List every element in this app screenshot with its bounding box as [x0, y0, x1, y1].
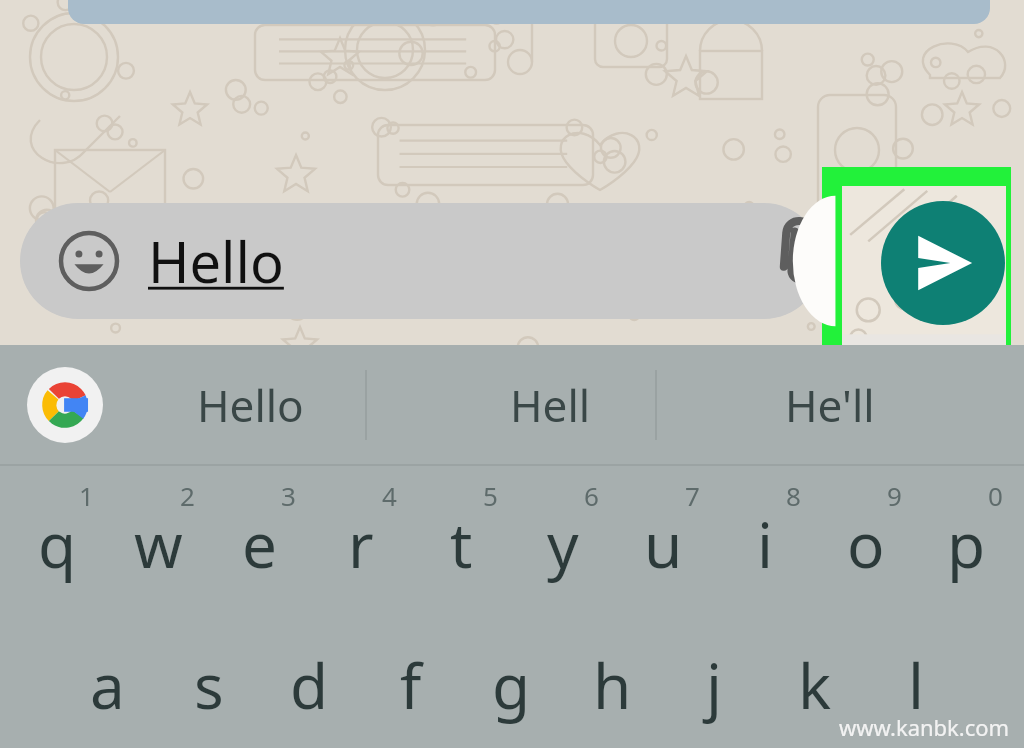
- staticText: l: [908, 643, 924, 727]
- staticText: s: [194, 643, 224, 727]
- button[interactable]: r: [310, 466, 411, 621]
- button[interactable]: i: [714, 466, 815, 621]
- staticText: p: [947, 502, 986, 586]
- staticText: t: [450, 502, 473, 586]
- staticText: u: [644, 502, 683, 586]
- button[interactable]: He'll: [700, 345, 960, 464]
- staticText: a: [90, 643, 125, 727]
- staticText: 9: [887, 478, 902, 513]
- button[interactable]: y: [512, 466, 613, 621]
- staticText: y: [547, 502, 579, 586]
- button[interactable]: u: [613, 466, 714, 621]
- staticText: w: [134, 502, 183, 586]
- staticText: i: [757, 502, 773, 586]
- button[interactable]: Emoji: [20, 203, 822, 319]
- button[interactable]: t: [411, 466, 512, 621]
- staticText: 8: [786, 478, 801, 513]
- button[interactable]: s: [158, 621, 259, 748]
- staticText: 3: [281, 478, 296, 513]
- staticText: o: [847, 502, 885, 586]
- button[interactable]: f: [360, 621, 461, 748]
- button[interactable]: k: [764, 621, 865, 748]
- button[interactable]: l: [865, 621, 966, 748]
- button[interactable]: e: [209, 466, 310, 621]
- staticText: Hello: [197, 375, 304, 435]
- staticText: 6: [584, 478, 599, 513]
- button[interactable]: h: [562, 621, 663, 748]
- button[interactable]: q: [7, 466, 108, 621]
- staticText: 0: [988, 478, 1003, 513]
- staticText: 1: [79, 478, 94, 513]
- button[interactable]: d: [259, 621, 360, 748]
- button[interactable]: o: [815, 466, 916, 621]
- staticText: www.kanbk.com: [839, 712, 1010, 742]
- staticText: 5: [483, 478, 498, 513]
- button[interactable]: Emoji: [58, 230, 120, 292]
- staticText: g: [492, 643, 531, 727]
- button[interactable]: a: [57, 621, 158, 748]
- staticText: r: [348, 502, 374, 586]
- button[interactable]: Attach: [762, 218, 836, 292]
- button[interactable]: Send: [881, 201, 1005, 325]
- staticText: 7: [685, 478, 700, 513]
- button[interactable]: j: [663, 621, 764, 748]
- staticText: d: [290, 643, 329, 727]
- staticText: 4: [382, 478, 397, 513]
- staticText: He'll: [785, 375, 875, 435]
- staticText: Hello: [148, 223, 284, 299]
- staticText: k: [798, 643, 832, 727]
- button[interactable]: g: [461, 621, 562, 748]
- staticText: e: [242, 502, 277, 586]
- staticText: f: [400, 643, 422, 727]
- staticText: 2: [180, 478, 195, 513]
- button[interactable]: Hello: [120, 345, 380, 464]
- staticText: q: [38, 502, 77, 586]
- button[interactable]: Google: [27, 367, 103, 443]
- staticText: Hell: [510, 375, 591, 435]
- button[interactable]: Hell: [420, 345, 680, 464]
- staticText: h: [593, 643, 632, 727]
- staticText: j: [706, 643, 722, 727]
- button[interactable]: w: [108, 466, 209, 621]
- button[interactable]: p: [916, 466, 1017, 621]
